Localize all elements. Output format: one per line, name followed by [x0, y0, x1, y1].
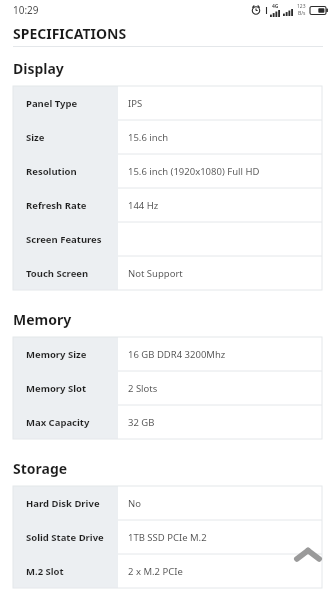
staticText: B/s	[298, 10, 306, 17]
button[interactable]: Max Capacity	[13, 405, 322, 439]
button[interactable]: Memory Slot	[13, 371, 322, 405]
staticText: 16 GB DDR4 3200Mhz	[128, 348, 226, 361]
staticText: Panel Type	[26, 97, 78, 110]
button[interactable]: Scroll to top	[288, 535, 328, 575]
button[interactable]: Refresh Rate	[13, 188, 322, 222]
staticText: 144 Hz	[128, 199, 159, 212]
button[interactable]: Solid State Drive	[13, 520, 322, 554]
staticText: Size	[26, 131, 45, 144]
staticText: Display	[13, 59, 64, 78]
staticText: Refresh Rate	[26, 199, 87, 212]
staticText: 15.6 inch (1920x1080) Full HD	[128, 165, 260, 178]
button[interactable]: Panel Type	[13, 86, 322, 120]
staticText: 2 Slots	[128, 382, 158, 395]
staticText: IPS	[128, 97, 143, 110]
staticText: Touch Screen	[26, 267, 89, 280]
staticText: Screen Features	[26, 233, 102, 246]
button[interactable]: Touch Screen	[13, 256, 322, 290]
staticText: M.2 Slot	[26, 565, 64, 578]
button[interactable]: Resolution	[13, 154, 322, 188]
staticText: 2 x M.2 PCIe	[128, 565, 183, 578]
staticText: Storage	[13, 459, 68, 478]
staticText: No	[128, 497, 141, 510]
staticText: Memory Size	[26, 348, 87, 361]
staticText: 4G	[272, 3, 279, 10]
staticText: 32 GB	[128, 416, 155, 429]
staticText: 15.6 inch	[128, 131, 169, 144]
staticText: SPECIFICATIONS	[13, 24, 127, 43]
button[interactable]: Hard Disk Drive	[13, 486, 322, 520]
button[interactable]: Memory Size	[13, 337, 322, 371]
staticText: 10:29	[13, 3, 39, 17]
staticText: Max Capacity	[26, 416, 90, 429]
button[interactable]: Screen Features	[13, 222, 322, 256]
staticText: 123	[297, 3, 306, 10]
button[interactable]: Size	[13, 120, 322, 154]
button[interactable]: M.2 Slot	[13, 554, 322, 588]
staticText: Hard Disk Drive	[26, 497, 100, 510]
staticText: Memory	[13, 310, 72, 329]
staticText: Memory Slot	[26, 382, 87, 395]
staticText: 1TB SSD PCIe M.2	[128, 531, 207, 544]
staticText: Not Support	[128, 267, 183, 280]
staticText: Resolution	[26, 165, 77, 178]
staticText: Solid State Drive	[26, 531, 104, 544]
